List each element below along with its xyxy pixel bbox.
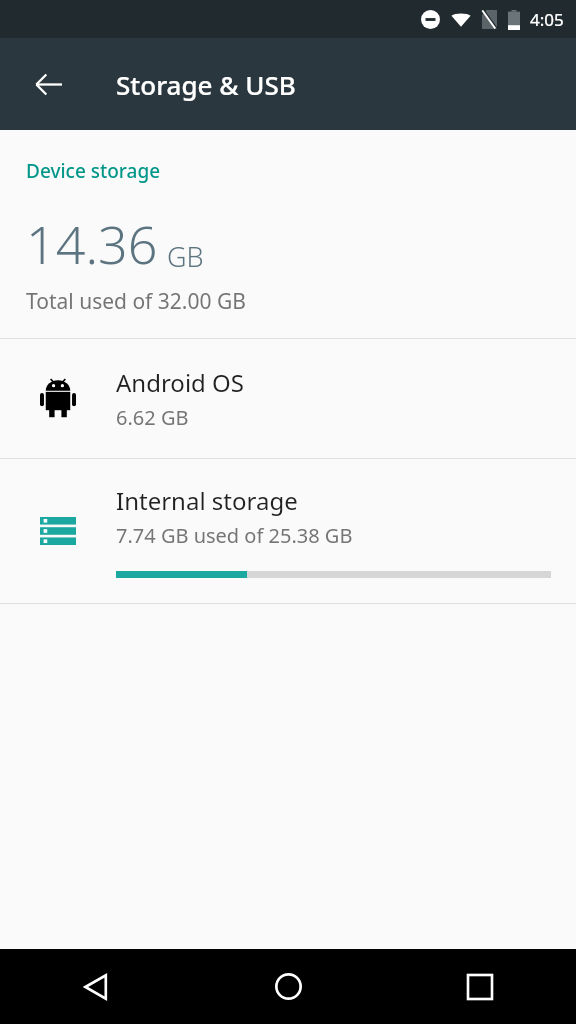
button[interactable]: Internal storage <box>0 459 576 603</box>
staticText: 6.62 GB <box>116 404 189 431</box>
staticText: Android OS <box>116 366 244 399</box>
staticText: 7.74 GB used of 25.38 GB <box>116 522 353 549</box>
staticText: Device storage <box>26 158 161 184</box>
staticText: Total used of 32.00 GB <box>26 287 246 316</box>
button[interactable]: Back <box>18 54 78 114</box>
staticText: Internal storage <box>116 484 298 517</box>
button[interactable]: Home <box>192 949 384 1024</box>
staticText: 14.36 <box>26 208 158 279</box>
button[interactable]: Back <box>0 949 192 1024</box>
button[interactable]: Recent apps <box>384 949 576 1024</box>
staticText: GB <box>167 238 204 275</box>
button[interactable]: Android OS <box>0 339 576 458</box>
staticText: 4:05 <box>530 8 564 31</box>
staticText: Storage & USB <box>116 67 296 102</box>
